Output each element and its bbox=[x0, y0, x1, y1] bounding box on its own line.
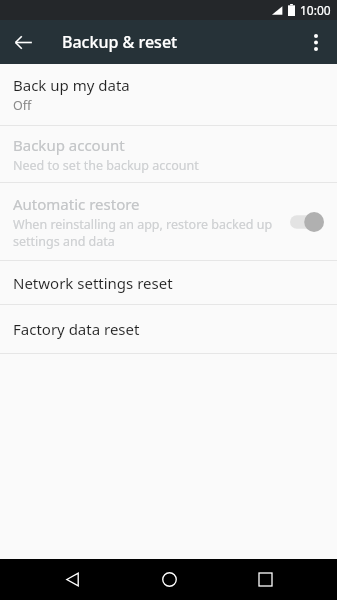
staticText: 10:00 bbox=[300, 2, 331, 18]
staticText: Backup account bbox=[13, 135, 125, 155]
staticText: When reinstalling an app, restore backed… bbox=[13, 216, 273, 233]
staticText: settings and data bbox=[13, 233, 115, 250]
button[interactable]: More options bbox=[299, 25, 333, 59]
staticText: Back up my data bbox=[13, 75, 130, 95]
staticText: Automatic restore bbox=[13, 194, 140, 214]
staticText: Factory data reset bbox=[13, 319, 140, 339]
staticText: Network settings reset bbox=[13, 273, 173, 293]
button[interactable]: Back up my data bbox=[0, 64, 337, 125]
button[interactable]: Factory data reset bbox=[0, 305, 337, 353]
button[interactable]: Backup account bbox=[0, 126, 337, 182]
staticText: Backup & reset bbox=[62, 31, 178, 53]
staticText: Need to set the backup account bbox=[13, 157, 199, 174]
button[interactable]: Network settings reset bbox=[0, 261, 337, 304]
button[interactable]: Back bbox=[7, 26, 39, 58]
staticText: Off bbox=[13, 97, 32, 114]
button[interactable]: Recent apps bbox=[241, 559, 289, 600]
button[interactable]: Back bbox=[48, 559, 96, 600]
button[interactable]: Automatic restore bbox=[0, 183, 337, 260]
button[interactable]: Home bbox=[145, 559, 193, 600]
button[interactable]: Automatic restore toggle bbox=[290, 211, 324, 233]
